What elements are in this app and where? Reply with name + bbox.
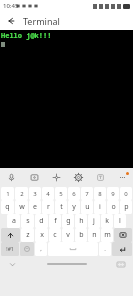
button[interactable]: . <box>99 242 111 256</box>
staticText: h <box>79 216 84 226</box>
staticText: g <box>66 216 71 226</box>
button[interactable]: w <box>15 200 28 214</box>
button[interactable]: o <box>107 200 119 214</box>
button[interactable]: 7 <box>81 187 93 200</box>
staticText: y <box>72 202 76 212</box>
button[interactable]: Space <box>48 242 98 256</box>
button[interactable]: 1 <box>1 187 14 200</box>
button[interactable]: n <box>88 228 100 242</box>
button[interactable]: g <box>62 214 74 228</box>
button[interactable]: 6 <box>68 187 80 200</box>
staticText: p <box>124 202 129 212</box>
staticText: o <box>111 202 116 212</box>
staticText: l <box>119 216 121 226</box>
staticText: 4 <box>46 190 50 198</box>
staticText: 6 <box>72 190 76 198</box>
staticText: 5 <box>59 190 63 198</box>
button[interactable]: Voice input <box>0 168 23 187</box>
button[interactable]: x <box>35 228 48 242</box>
button[interactable]: 9 <box>107 187 119 200</box>
button[interactable]: i <box>94 200 106 214</box>
button[interactable]: v <box>62 228 74 242</box>
staticText: z <box>26 230 30 240</box>
staticText: q <box>5 202 10 212</box>
button[interactable]: f <box>49 214 61 228</box>
staticText: x <box>40 230 44 240</box>
button[interactable]: m <box>101 228 113 242</box>
staticText: 2 <box>20 190 24 198</box>
button[interactable]: Emoji <box>20 242 34 256</box>
staticText: w <box>19 202 25 212</box>
staticText: !#1 <box>6 246 14 253</box>
button[interactable]: Settings <box>67 168 89 187</box>
button[interactable]: l <box>114 214 126 228</box>
staticText: f <box>54 216 57 226</box>
button[interactable]: 4 <box>42 187 54 200</box>
button[interactable]: h <box>75 214 87 228</box>
button[interactable]: 8 <box>94 187 106 200</box>
button[interactable]: r <box>42 200 54 214</box>
button[interactable]: d <box>35 214 48 228</box>
button[interactable]: Backspace <box>114 228 132 242</box>
button[interactable]: Enter <box>112 242 132 256</box>
staticText: 3 <box>33 190 37 198</box>
button[interactable]: Hide keyboard <box>6 258 18 270</box>
staticText: 7 <box>85 190 89 198</box>
button[interactable]: , <box>35 242 47 256</box>
button[interactable]: e <box>29 200 41 214</box>
staticText: , <box>40 245 42 253</box>
button[interactable]: z <box>21 228 34 242</box>
staticText: i <box>99 202 101 212</box>
staticText: 9 <box>111 190 115 198</box>
staticText: a <box>12 216 16 226</box>
staticText: 1 <box>6 190 10 198</box>
staticText: m <box>104 230 111 240</box>
staticText: r <box>47 202 50 212</box>
button[interactable]: Shift <box>1 228 20 242</box>
staticText: t <box>60 202 63 212</box>
staticText: e <box>33 202 37 212</box>
button[interactable]: k <box>101 214 113 228</box>
staticText: v <box>66 230 70 240</box>
button[interactable]: j <box>88 214 100 228</box>
button[interactable]: p <box>120 200 132 214</box>
staticText: j <box>93 216 95 226</box>
button[interactable]: 3 <box>29 187 41 200</box>
button[interactable]: Stickers <box>23 168 45 187</box>
button[interactable]: 2 <box>15 187 28 200</box>
button[interactable]: u <box>81 200 93 214</box>
button[interactable]: !#1 <box>1 242 19 256</box>
staticText: Hello j@k!!! <box>1 31 52 41</box>
button[interactable]: 5 <box>55 187 67 200</box>
button[interactable]: Text mode <box>89 168 111 187</box>
button[interactable]: Switch keyboard <box>115 258 127 270</box>
staticText: . <box>104 245 106 253</box>
staticText: d <box>39 216 44 226</box>
staticText: 10:45 <box>3 2 19 10</box>
staticText: k <box>105 216 109 226</box>
button[interactable]: Navigate <box>45 168 67 187</box>
button[interactable]: y <box>68 200 80 214</box>
button[interactable]: q <box>1 200 14 214</box>
staticText: u <box>85 202 90 212</box>
button[interactable]: b <box>75 228 87 242</box>
button[interactable]: c <box>49 228 61 242</box>
staticText: n <box>92 230 97 240</box>
button[interactable]: Back <box>4 14 18 28</box>
staticText: 8 <box>98 190 102 198</box>
button[interactable]: 0 <box>120 187 132 200</box>
button[interactable]: t <box>55 200 67 214</box>
button[interactable]: a <box>7 214 20 228</box>
button[interactable]: s <box>21 214 34 228</box>
staticText: Terminal <box>23 15 60 27</box>
button[interactable]: Hello j@k!!! <box>0 30 133 168</box>
staticText: 0 <box>124 190 128 198</box>
staticText: c <box>53 230 57 240</box>
staticText: s <box>26 216 30 226</box>
button[interactable]: More options <box>111 168 133 187</box>
staticText: b <box>79 230 84 240</box>
